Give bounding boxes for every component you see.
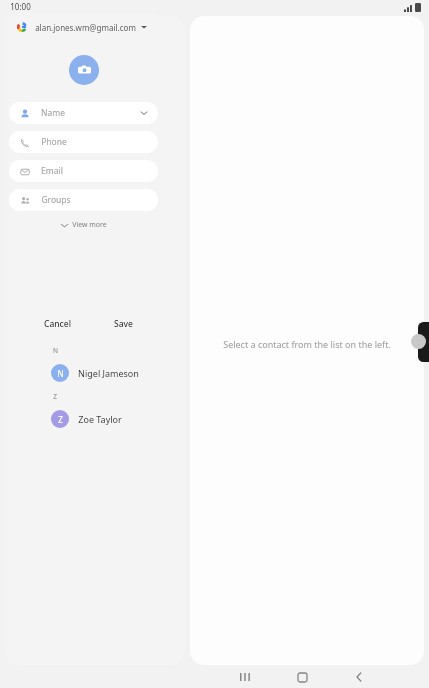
staticText: 10:00 <box>10 1 31 12</box>
staticText: Phone <box>41 136 67 148</box>
staticText: Save <box>114 318 133 328</box>
button[interactable]: Z <box>5 404 185 434</box>
button[interactable]: Phone <box>9 131 158 153</box>
button[interactable]: Email <box>9 160 158 182</box>
staticText: Nigel Jameson <box>78 367 139 379</box>
staticText: N <box>57 368 64 379</box>
button[interactable]: Name <box>9 102 158 124</box>
button[interactable]: View more <box>5 217 162 233</box>
button[interactable]: alan.jones.wm@gmail.com <box>5 13 162 41</box>
staticText: N <box>53 346 58 355</box>
staticText: Groups <box>41 194 71 206</box>
button[interactable]: Cancel <box>39 313 76 333</box>
button[interactable]: N <box>5 358 185 388</box>
staticText: Z <box>53 392 57 401</box>
button[interactable]: Edge panel handle <box>418 322 429 362</box>
staticText: Cancel <box>44 318 71 328</box>
staticText: Zoe Taylor <box>78 413 122 425</box>
staticText: Z <box>58 414 63 425</box>
button[interactable]: Add photo <box>69 55 99 85</box>
button[interactable]: Groups <box>9 189 158 211</box>
staticText: Select a contact from the list on the le… <box>223 338 391 350</box>
button[interactable]: Save <box>109 313 138 333</box>
staticText: Email <box>41 165 63 177</box>
staticText: View more <box>72 220 107 230</box>
staticText: alan.jones.wm@gmail.com <box>35 22 136 33</box>
staticText: Name <box>41 107 65 119</box>
